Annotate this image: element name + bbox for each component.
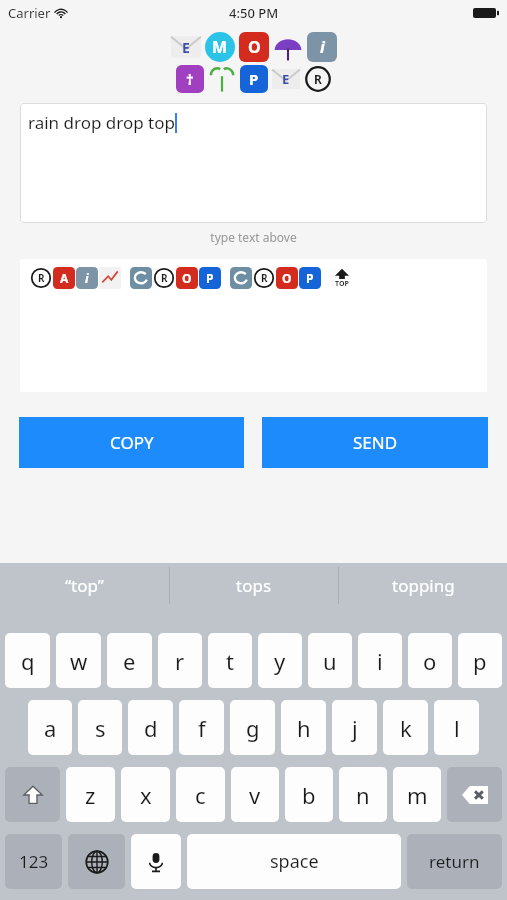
staticText: w bbox=[70, 646, 88, 676]
staticText: d bbox=[144, 713, 158, 743]
staticText: type text above bbox=[0, 229, 507, 245]
staticText: M bbox=[212, 36, 228, 58]
button[interactable]: i bbox=[358, 633, 402, 688]
button[interactable]: s bbox=[78, 700, 122, 755]
button[interactable]: j bbox=[332, 700, 377, 755]
staticText: O bbox=[282, 270, 292, 286]
button[interactable]: v bbox=[231, 767, 279, 822]
button[interactable]: tops bbox=[170, 563, 338, 608]
staticText: p bbox=[473, 646, 487, 676]
staticText: P bbox=[206, 270, 214, 286]
staticText: COPY bbox=[110, 431, 154, 454]
staticText: 123 bbox=[19, 850, 49, 873]
button[interactable]: y bbox=[258, 633, 302, 688]
staticText: i bbox=[377, 646, 383, 676]
button[interactable]: x bbox=[121, 767, 170, 822]
staticText: x bbox=[140, 780, 152, 810]
staticText: return bbox=[429, 850, 480, 873]
button[interactable]: r bbox=[158, 633, 202, 688]
staticText: O bbox=[248, 36, 261, 58]
button[interactable]: u bbox=[308, 633, 352, 688]
button[interactable]: return bbox=[407, 834, 502, 889]
button[interactable]: k bbox=[383, 700, 428, 755]
staticText: y bbox=[274, 646, 286, 676]
button[interactable]: t bbox=[208, 633, 252, 688]
button[interactable]: “top” bbox=[0, 563, 169, 608]
staticText: n bbox=[356, 780, 370, 810]
button[interactable]: Backspace bbox=[447, 767, 502, 822]
staticText: “top” bbox=[65, 574, 104, 597]
button[interactable]: q bbox=[5, 633, 50, 688]
staticText: c bbox=[195, 780, 206, 810]
staticText: space bbox=[270, 849, 319, 874]
staticText: k bbox=[400, 713, 412, 743]
button[interactable]: h bbox=[281, 700, 326, 755]
staticText: P bbox=[249, 69, 259, 89]
button[interactable]: R bbox=[20, 259, 487, 392]
button[interactable]: c bbox=[176, 767, 225, 822]
button[interactable]: a bbox=[28, 700, 72, 755]
button[interactable]: Shift bbox=[5, 767, 60, 822]
staticText: i bbox=[320, 36, 325, 58]
staticText: Carrier bbox=[8, 4, 51, 22]
button[interactable]: e bbox=[107, 633, 152, 688]
button[interactable]: n bbox=[339, 767, 387, 822]
staticText: r bbox=[175, 646, 185, 676]
staticText: f bbox=[198, 713, 206, 743]
staticText: l bbox=[454, 713, 460, 743]
staticText: R bbox=[314, 71, 322, 87]
button[interactable]: d bbox=[128, 700, 173, 755]
button[interactable]: z bbox=[66, 767, 115, 822]
button[interactable]: l bbox=[434, 700, 479, 755]
staticText: u bbox=[323, 646, 337, 676]
staticText: v bbox=[249, 780, 261, 810]
staticText: rain drop drop top bbox=[28, 111, 175, 134]
button[interactable]: m bbox=[393, 767, 441, 822]
button[interactable]: f bbox=[179, 700, 224, 755]
staticText: R bbox=[161, 271, 168, 285]
staticText: g bbox=[246, 713, 260, 743]
staticText: m bbox=[407, 780, 428, 810]
staticText: P bbox=[306, 270, 314, 286]
staticText: topping bbox=[392, 574, 455, 597]
button[interactable]: COPY bbox=[19, 417, 244, 468]
staticText: R bbox=[261, 271, 268, 285]
button[interactable]: Dictation bbox=[131, 834, 181, 889]
staticText: E bbox=[182, 38, 190, 57]
button[interactable]: p bbox=[458, 633, 502, 688]
button[interactable]: rain drop drop top bbox=[20, 103, 487, 223]
staticText: R bbox=[38, 271, 45, 285]
staticText: E bbox=[282, 70, 290, 88]
staticText: a bbox=[44, 713, 57, 743]
staticText: h bbox=[297, 713, 311, 743]
button[interactable]: g bbox=[230, 700, 275, 755]
staticText: j bbox=[352, 713, 358, 743]
staticText: † bbox=[186, 69, 194, 89]
button[interactable]: topping bbox=[339, 563, 507, 608]
staticText: O bbox=[182, 270, 192, 286]
staticText: i bbox=[85, 270, 89, 286]
staticText: s bbox=[95, 713, 106, 743]
staticText: b bbox=[302, 780, 316, 810]
button[interactable]: b bbox=[285, 767, 333, 822]
staticText: 4:50 PM bbox=[229, 4, 279, 22]
staticText: e bbox=[123, 646, 136, 676]
staticText: A bbox=[60, 270, 69, 286]
staticText: o bbox=[423, 646, 437, 676]
button[interactable]: SEND bbox=[262, 417, 488, 468]
staticText: tops bbox=[236, 574, 272, 597]
button[interactable]: w bbox=[56, 633, 101, 688]
button[interactable]: space bbox=[187, 834, 401, 889]
staticText: q bbox=[21, 646, 35, 676]
button[interactable]: o bbox=[408, 633, 452, 688]
staticText: z bbox=[85, 780, 96, 810]
button[interactable]: Change keyboard bbox=[68, 834, 125, 889]
staticText: TOP bbox=[335, 279, 349, 289]
button[interactable]: 123 bbox=[5, 834, 62, 889]
staticText: t bbox=[226, 646, 234, 676]
staticText: SEND bbox=[353, 431, 398, 454]
